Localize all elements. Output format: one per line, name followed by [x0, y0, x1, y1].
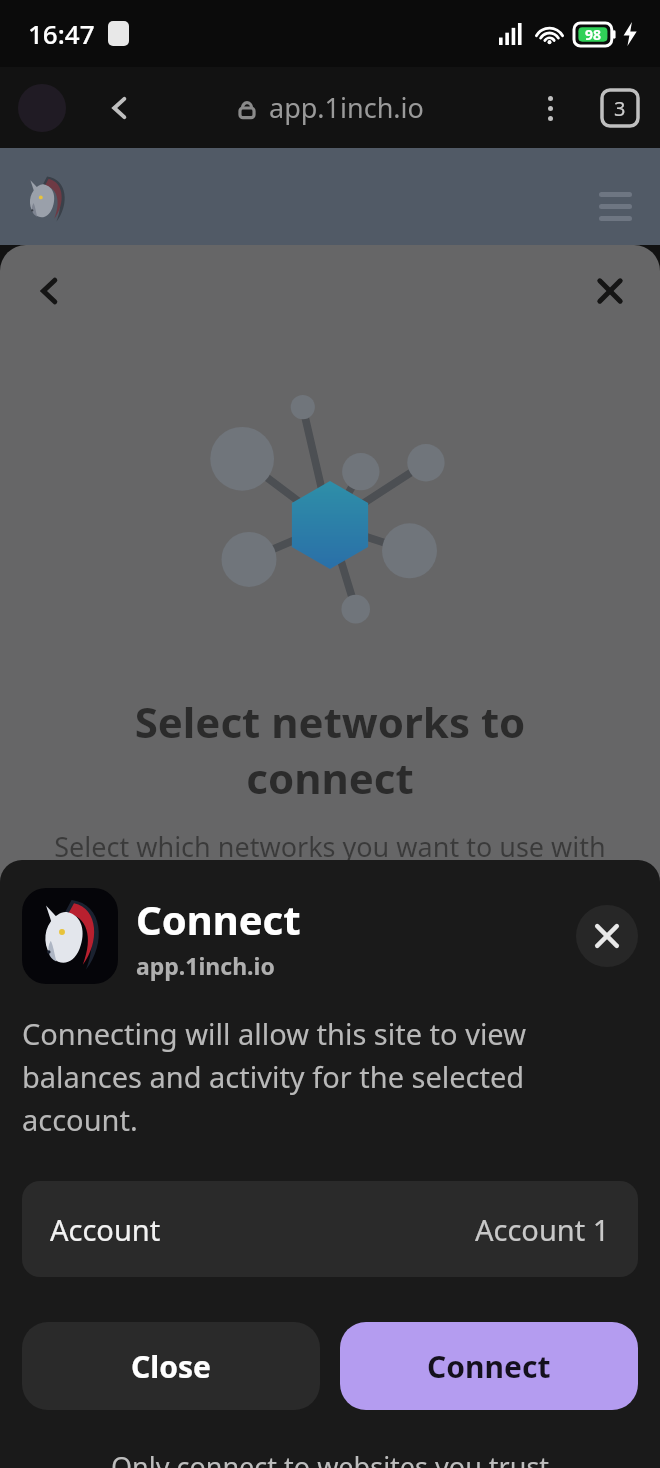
staticText: Account [50, 1210, 161, 1249]
staticText: Connecting will allow this site to view … [22, 1014, 638, 1139]
staticText: Select which networks you want to use wi… [24, 828, 636, 903]
staticText: app.1inch.io [136, 950, 275, 981]
button[interactable]: Connect [340, 1322, 638, 1410]
button[interactable]: Close [576, 905, 638, 967]
button[interactable]: Account [22, 1181, 638, 1277]
button[interactable]: Close [22, 1322, 320, 1410]
staticText: 16:47 [28, 16, 95, 51]
staticText: Only connect to websites you trust [22, 1448, 638, 1468]
button[interactable]: More options [526, 84, 574, 132]
staticText: 3 [614, 95, 626, 122]
button[interactable]: Back [92, 80, 148, 136]
button[interactable]: Back [22, 263, 78, 319]
button[interactable]: Close [582, 263, 638, 319]
staticText: Close [131, 1346, 211, 1387]
staticText: Select networks to connect [30, 693, 630, 806]
staticText: Connect [427, 1346, 551, 1387]
staticText: 98 [585, 25, 602, 44]
button[interactable]: Profile [18, 84, 66, 132]
button[interactable]: Tabs [600, 88, 640, 128]
staticText: Connect [136, 892, 301, 946]
staticText: Account 1 [475, 1210, 610, 1249]
staticText: app.1inch.io [269, 89, 424, 126]
